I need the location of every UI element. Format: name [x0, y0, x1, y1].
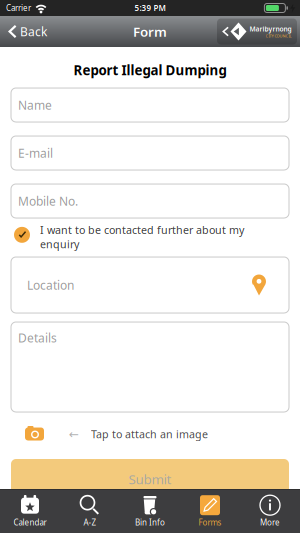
staticText: Back	[20, 23, 47, 39]
staticText: Name	[18, 97, 52, 113]
staticText: Details	[18, 330, 57, 346]
staticText: Carrier	[6, 3, 31, 13]
staticText: Forms	[198, 517, 221, 528]
button[interactable]: Name	[0, 78, 300, 122]
staticText: Report Illegal Dumping	[73, 61, 226, 79]
staticText: 5:39 PM	[134, 3, 165, 13]
button[interactable]: I want to be contacted further about my …	[0, 218, 300, 251]
staticText: Maribyrnong	[249, 24, 291, 33]
staticText: A-Z	[83, 517, 96, 528]
staticText: Tap to attach an image	[91, 427, 208, 441]
staticText: Bin Info	[135, 517, 165, 528]
staticText: Location	[27, 277, 74, 293]
button[interactable]: Location	[0, 251, 300, 313]
staticText: CITY COUNCIL	[265, 33, 291, 39]
button[interactable]: Calendar	[0, 494, 60, 528]
staticText: E-mail	[18, 145, 53, 161]
button[interactable]: Forms	[180, 494, 240, 528]
button[interactable]: More	[240, 494, 300, 528]
button[interactable]: Maribyrnong City Council	[217, 18, 300, 44]
staticText: I want to be contacted further about my …	[40, 223, 244, 251]
button[interactable]: Details	[0, 313, 300, 412]
button[interactable]: E-mail	[0, 122, 300, 170]
button[interactable]: Mobile No.	[0, 170, 300, 218]
staticText: Calendar	[13, 517, 46, 528]
staticText: Mobile No.	[18, 193, 78, 209]
button[interactable]: Submit	[0, 442, 300, 499]
button[interactable]: Back	[0, 23, 47, 39]
button[interactable]: Bin Info	[120, 494, 180, 528]
button[interactable]: Attach an image	[0, 412, 300, 442]
button[interactable]: A-Z	[60, 494, 120, 528]
staticText: Form	[133, 23, 167, 40]
staticText: More	[260, 517, 280, 528]
staticText: ←	[69, 427, 79, 441]
staticText: Submit	[128, 470, 171, 488]
